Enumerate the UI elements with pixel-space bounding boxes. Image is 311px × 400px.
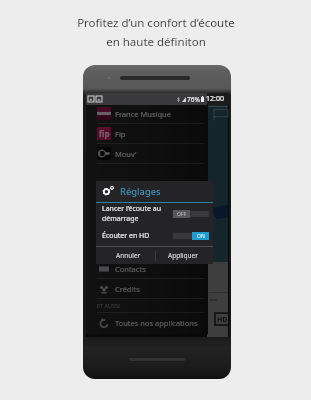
button[interactable]: France Musique: [86, 104, 208, 123]
staticText: France Musique: [115, 109, 171, 119]
button[interactable]: Lancer l’écoute au: [96, 203, 213, 225]
staticText: fip: [99, 128, 110, 139]
button[interactable]: Appliquer: [156, 247, 210, 264]
staticText: démarrage: [102, 214, 139, 224]
other: Settings: [102, 185, 115, 198]
staticText: Profitez d’un confort d’écoute: [77, 15, 235, 31]
button[interactable]: Crédits: [86, 279, 208, 298]
staticText: Lancer l’écoute au: [102, 204, 161, 214]
staticText: ON: [197, 233, 205, 240]
staticText: Fip: [115, 129, 126, 139]
staticText: HD: [217, 315, 228, 325]
staticText: Crédits: [115, 284, 140, 294]
staticText: Appliquer: [168, 251, 198, 260]
staticText: Contacts: [115, 264, 146, 274]
staticText: ET AUSSI: [97, 302, 120, 309]
button[interactable]: Off: [173, 209, 209, 219]
button[interactable]: Écouter en HD: [96, 225, 213, 246]
staticText: Écouter en HD: [102, 231, 173, 241]
staticText: Annuler: [116, 251, 141, 260]
staticText: 76%: [187, 95, 200, 104]
button[interactable]: Annuler: [101, 247, 155, 264]
button[interactable]: Contacts: [86, 259, 208, 278]
staticText: Mouv’: [115, 149, 137, 159]
button[interactable]: On: [173, 231, 209, 241]
staticText: OFF: [177, 211, 187, 218]
button[interactable]: fip: [86, 124, 208, 143]
button[interactable]: Toutes nos applications: [86, 313, 208, 332]
staticText: Toutes nos applications: [115, 318, 198, 328]
staticText: en haute définiton: [106, 34, 206, 50]
staticText: 12:00: [206, 94, 224, 104]
staticText: Réglages: [120, 185, 161, 198]
button[interactable]: Mouv’: [86, 144, 208, 163]
